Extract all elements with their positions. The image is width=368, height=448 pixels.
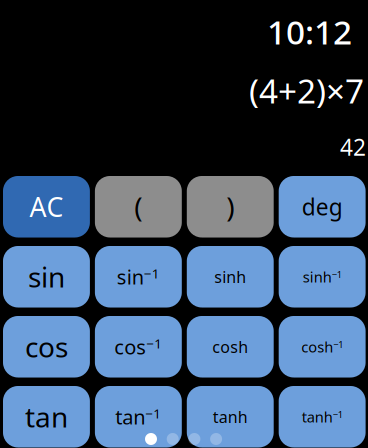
staticText: sin [28, 258, 65, 295]
staticText: sinh−1 [303, 267, 342, 286]
button[interactable]: sine [3, 246, 90, 307]
button[interactable]: Degrees [279, 176, 366, 237]
staticText: sin−1 [117, 263, 160, 290]
button[interactable]: inverse hyperbolic cosine [279, 316, 366, 377]
staticText: tan [25, 398, 68, 435]
button[interactable]: inverse tangent [95, 386, 182, 447]
button[interactable]: hyperbolic tangent [187, 386, 274, 447]
staticText: ( [134, 188, 142, 225]
button[interactable]: tangent [3, 386, 90, 447]
button[interactable]: Open parenthesis [95, 176, 182, 237]
button[interactable]: All clear [3, 176, 90, 237]
staticText: sinh [214, 266, 246, 287]
button[interactable]: hyperbolic sine [187, 246, 274, 307]
staticText: (4+2)×7 [249, 68, 364, 113]
staticText: AC [29, 189, 63, 224]
staticText: tan−1 [115, 403, 161, 430]
button[interactable]: hyperbolic cosine [187, 316, 274, 377]
button[interactable]: inverse sine [95, 246, 182, 307]
staticText: tanh−1 [302, 407, 343, 426]
staticText: 42 [340, 132, 366, 162]
button[interactable]: inverse cosine [95, 316, 182, 377]
button[interactable]: inverse hyperbolic tangent [279, 386, 366, 447]
staticText: ) [226, 188, 234, 225]
staticText: cosh [212, 336, 248, 357]
button[interactable]: Close parenthesis [187, 176, 274, 237]
staticText: tanh [213, 406, 248, 427]
staticText: 10:12 [267, 9, 352, 54]
button[interactable]: inverse hyperbolic sine [279, 246, 366, 307]
button[interactable]: cosine [3, 316, 90, 377]
staticText: cos−1 [114, 333, 162, 360]
staticText: deg [302, 192, 343, 222]
staticText: cos [25, 328, 68, 365]
staticText: cosh−1 [301, 337, 343, 356]
